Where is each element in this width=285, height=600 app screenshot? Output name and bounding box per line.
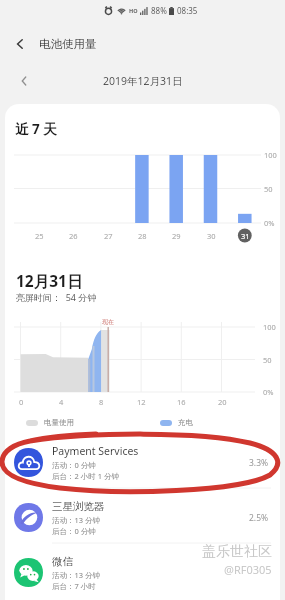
staticText: 31 xyxy=(241,231,250,241)
staticText: 16 xyxy=(177,397,186,407)
staticText: 三星浏览器 xyxy=(52,500,105,513)
button[interactable]: Back xyxy=(0,26,39,62)
staticText: 50 xyxy=(264,184,273,194)
staticText: 3.3% xyxy=(249,457,269,469)
staticText: 08:35 xyxy=(177,5,198,16)
staticText: 活动：13 分钟 xyxy=(52,515,101,525)
staticText: 亮屏时间： 54 分钟 xyxy=(16,291,97,303)
staticText: 0 xyxy=(19,397,24,407)
staticText: 25 xyxy=(35,231,44,241)
staticText: 100 xyxy=(264,150,277,160)
staticText: 88% xyxy=(151,5,167,16)
staticText: 100 xyxy=(263,322,276,332)
staticText: 现在 xyxy=(102,318,114,326)
button[interactable]: Previous day xyxy=(13,70,35,92)
staticText: 后台：0 分钟 xyxy=(52,526,96,536)
staticText: 后台：7 小时 xyxy=(52,581,96,591)
staticText: 50 xyxy=(263,355,272,365)
staticText: 8 xyxy=(99,397,104,407)
staticText: 26 xyxy=(69,231,78,241)
staticText: 30 xyxy=(207,231,216,241)
button[interactable]: Payment Services xyxy=(0,435,285,490)
staticText: 后台：2 小时 1 分钟 xyxy=(52,471,119,481)
staticText: HO xyxy=(129,7,138,14)
staticText: 12 xyxy=(137,397,146,407)
staticText: 27 xyxy=(104,231,113,241)
staticText: 微信 xyxy=(52,555,73,568)
staticText: 4 xyxy=(59,397,64,407)
staticText: Payment Services xyxy=(52,444,139,458)
button[interactable]: 微信 xyxy=(0,545,285,600)
staticText: 电量使用 xyxy=(44,418,74,427)
staticText: 0% xyxy=(263,387,274,397)
staticText: 28 xyxy=(138,231,147,241)
staticText: 充电 xyxy=(178,418,193,427)
staticText: 0% xyxy=(264,218,275,228)
staticText: 近 7 天 xyxy=(15,120,57,138)
staticText: 活动：0 分钟 xyxy=(52,460,96,470)
staticText: 20 xyxy=(218,397,227,407)
staticText: 盖乐世社区 xyxy=(202,543,272,561)
staticText: 电池使用量 xyxy=(39,37,97,51)
staticText: @RF0305 xyxy=(224,562,272,577)
staticText: 活动：13 分钟 xyxy=(52,570,101,580)
button[interactable]: 三星浏览器 xyxy=(0,490,285,545)
staticText: 12月31日 xyxy=(16,270,83,291)
staticText: 2.5% xyxy=(249,512,269,524)
staticText: 2019年12月31日 xyxy=(103,74,183,88)
staticText: 29 xyxy=(172,231,181,241)
